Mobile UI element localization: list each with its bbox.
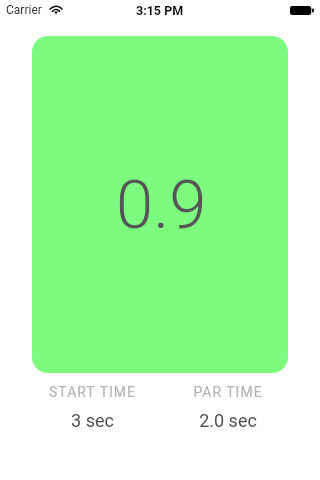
- staticText: Carrier: [6, 3, 42, 17]
- staticText: START TIME: [49, 384, 136, 400]
- other: Wi-Fi signal strength: [49, 5, 63, 14]
- staticText: 0.9: [116, 166, 207, 245]
- staticText: 3 sec: [71, 410, 114, 431]
- button[interactable]: START TIME: [24, 384, 160, 431]
- staticText: PAR TIME: [193, 384, 263, 400]
- other: Battery full: [290, 6, 314, 15]
- button[interactable]: 0.9: [32, 36, 288, 373]
- button[interactable]: PAR TIME: [160, 384, 296, 431]
- staticText: 2.0 sec: [199, 410, 257, 431]
- staticText: 3:15 PM: [136, 3, 184, 18]
